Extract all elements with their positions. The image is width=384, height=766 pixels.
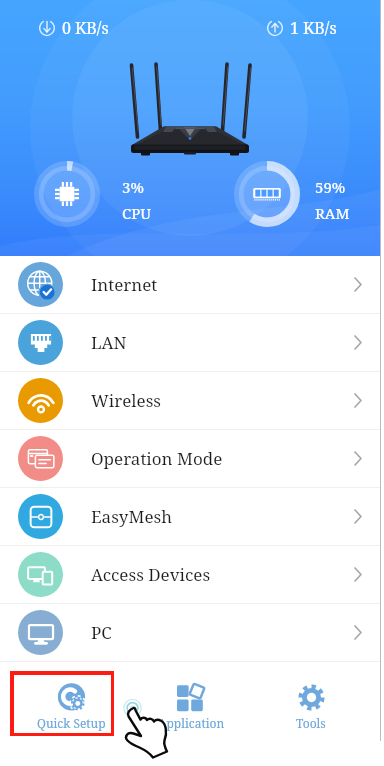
button[interactable]: Application [132,662,251,766]
staticText: Tools [296,715,326,731]
button[interactable]: Quick Setup [12,662,131,766]
button[interactable]: EasyMesh [0,488,380,545]
staticText: Access Devices [91,563,211,586]
button[interactable]: PC [0,604,380,661]
staticText: Wireless [91,389,162,412]
staticText: 0 KB/s [62,17,109,39]
staticText: LAN [91,331,127,354]
staticText: RAM [315,203,350,223]
staticText: PC [91,621,112,644]
staticText: 1 KB/s [290,17,337,39]
staticText: 3% [122,177,144,197]
button[interactable]: LAN [0,314,380,371]
staticText: Operation Mode [91,447,223,470]
staticText: EasyMesh [91,505,172,528]
button[interactable]: Wireless [0,372,380,429]
staticText: Internet [91,273,158,296]
button[interactable]: Tools [251,662,370,766]
button[interactable]: Operation Mode [0,430,380,487]
button[interactable]: Access Devices [0,546,380,603]
staticText: CPU [122,203,152,223]
staticText: Application [158,715,225,731]
button[interactable]: Internet [0,256,380,313]
staticText: Quick Setup [37,715,106,731]
staticText: 59% [315,177,346,197]
staticText: Quick Setup [37,715,106,731]
